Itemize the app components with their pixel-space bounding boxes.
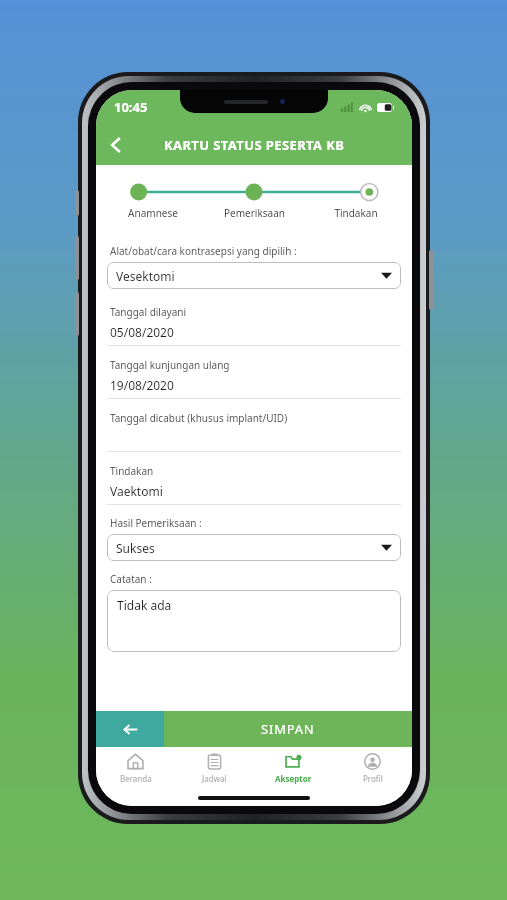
staticText: Tanggal kunjungan ulang	[110, 358, 230, 372]
staticText: SIMPAN	[261, 720, 315, 738]
button[interactable]: Akseptor	[254, 747, 333, 789]
staticText: 05/08/2020	[110, 324, 174, 340]
button[interactable]: Vesektomi	[107, 262, 401, 289]
staticText: Anamnese	[128, 206, 178, 220]
staticText: 19/08/2020	[110, 377, 174, 393]
button[interactable]: SIMPAN	[164, 711, 412, 747]
staticText: Tidak ada	[117, 597, 172, 613]
staticText: Sukses	[116, 540, 155, 556]
button[interactable]: 19/08/2020	[107, 372, 401, 398]
button[interactable]: Back	[96, 711, 164, 747]
staticText: Hasil Pemeriksaan :	[110, 516, 202, 530]
button[interactable]: Jadwal	[175, 747, 254, 789]
button[interactable]: Back	[96, 125, 136, 165]
staticText: Alat/obat/cara kontrasepsi yang dipilih …	[110, 244, 297, 258]
staticText: Tanggal dicabut (khusus implant/UID)	[110, 411, 288, 425]
staticText: Tindakan	[110, 464, 154, 478]
button[interactable]: Sukses	[107, 534, 401, 561]
staticText: Vaektomi	[110, 483, 163, 499]
button[interactable]: Profil	[333, 747, 412, 789]
button[interactable]: Beranda	[96, 747, 175, 789]
staticText: Akseptor	[275, 773, 312, 784]
staticText: Vesektomi	[116, 268, 175, 284]
staticText: Pemeriksaan	[224, 206, 285, 220]
staticText: 10:45	[114, 98, 148, 116]
staticText: Catatan :	[110, 572, 152, 586]
staticText: Tanggal dilayani	[110, 305, 187, 319]
button[interactable]: Tidak ada	[107, 590, 401, 652]
button[interactable]: Vaektomi	[107, 478, 401, 504]
staticText: Jadwal	[202, 773, 227, 784]
staticText: Profil	[363, 773, 383, 784]
staticText: Beranda	[120, 773, 152, 784]
staticText: Tindakan	[334, 206, 378, 220]
button[interactable]: 05/08/2020	[107, 319, 401, 345]
staticText: KARTU STATUS PESERTA KB	[164, 136, 345, 154]
